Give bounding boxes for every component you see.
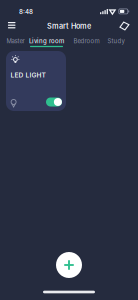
staticText: Smart Home [47, 22, 91, 30]
staticText: Living room [29, 37, 64, 45]
staticText: Study [107, 37, 124, 45]
button[interactable]: Rooms [115, 19, 133, 33]
button[interactable]: LED LIGHT [6, 51, 66, 111]
button[interactable]: Study [106, 37, 125, 47]
button[interactable]: Living room [30, 37, 63, 47]
staticText: 8:48 [19, 8, 33, 15]
staticText: LED LIGHT [10, 71, 45, 79]
button[interactable]: Add device [56, 252, 82, 278]
button[interactable]: Bedroom [72, 37, 100, 47]
staticText: Bedroom [73, 37, 99, 45]
staticText: Master [6, 37, 24, 45]
button[interactable]: Menu [3, 18, 21, 32]
button[interactable]: Master [5, 37, 25, 47]
